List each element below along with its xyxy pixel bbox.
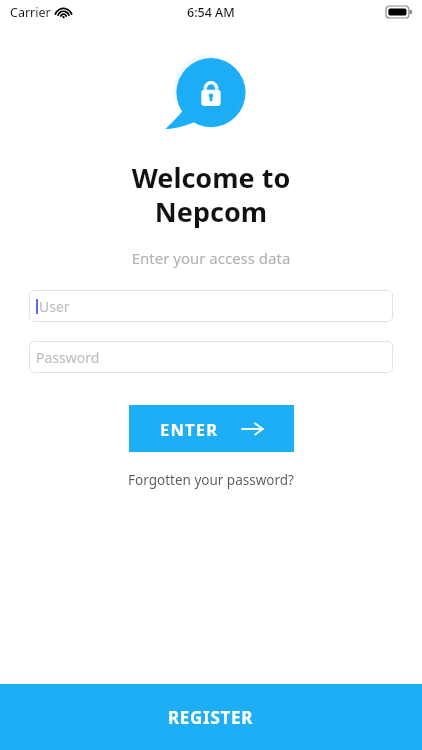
button[interactable]: Password (29, 341, 393, 373)
button[interactable]: REGISTER (0, 684, 422, 750)
staticText: User (39, 297, 70, 316)
staticText: ENTER (160, 418, 219, 440)
staticText: REGISTER (168, 706, 254, 729)
staticText: Password (36, 348, 100, 367)
staticText: 6:54 AM (187, 4, 235, 21)
staticText: Enter your access data (0, 248, 422, 268)
staticText: Forgotten your password? (128, 471, 294, 489)
other: Enter (241, 420, 264, 438)
button[interactable]: ENTER (129, 405, 294, 452)
button[interactable]: User (29, 290, 393, 322)
button[interactable]: Forgotten your password? (0, 467, 422, 493)
staticText: Carrier (10, 4, 51, 21)
staticText: Welcome to Nepcom (0, 159, 422, 230)
